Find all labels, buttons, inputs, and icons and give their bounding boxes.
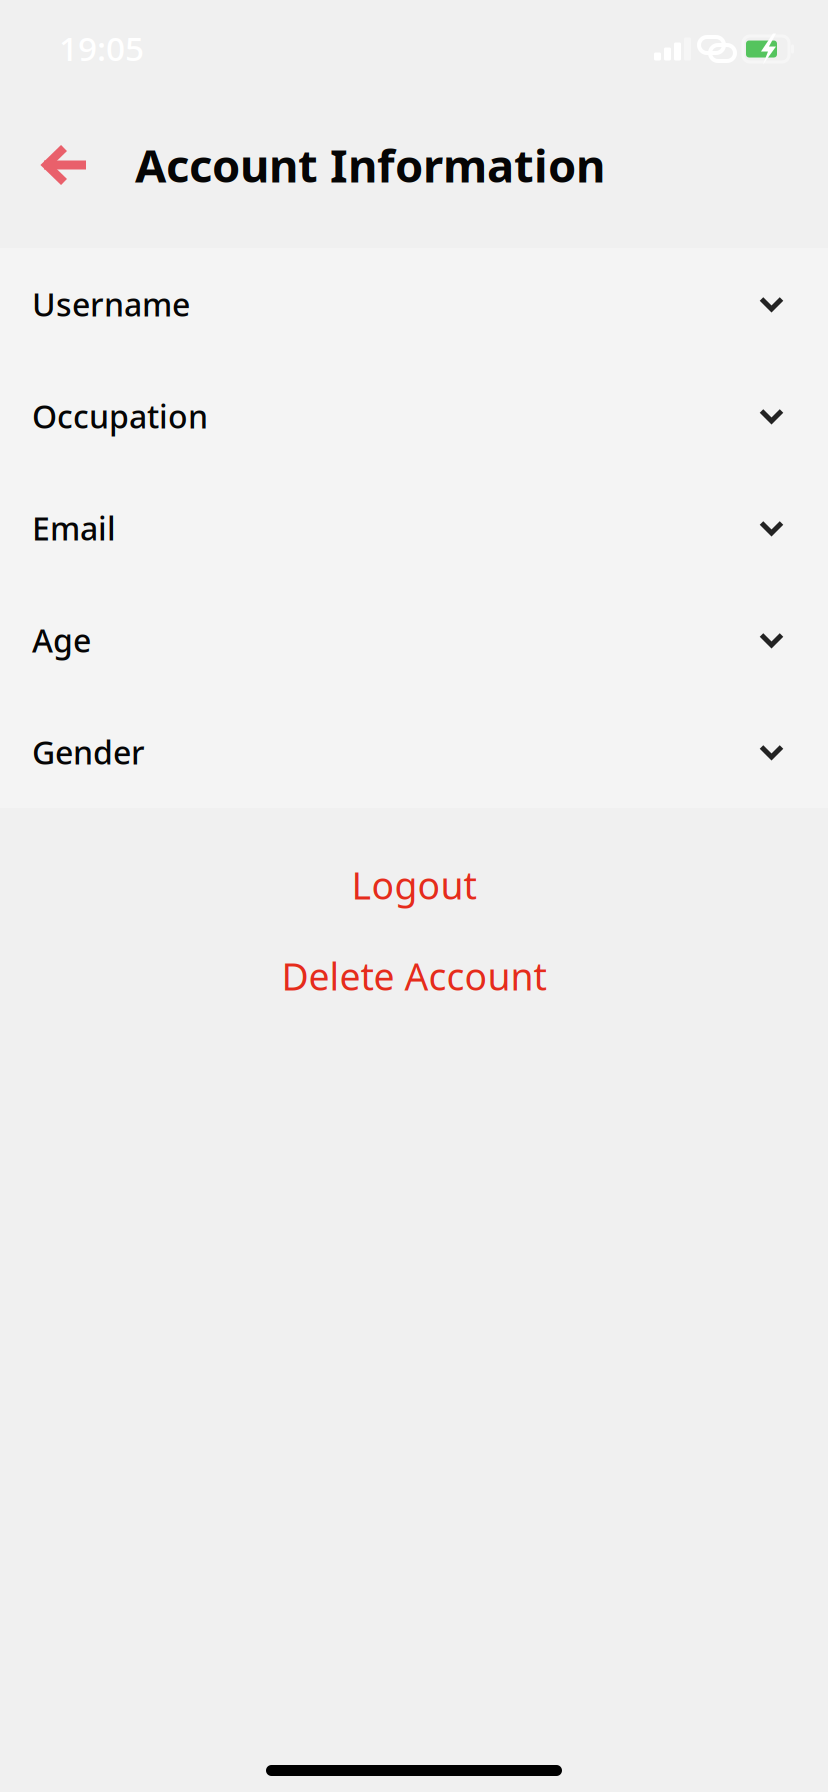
- staticText: Logout: [351, 860, 476, 910]
- button[interactable]: Back: [0, 124, 101, 206]
- button[interactable]: Occupation: [0, 360, 828, 472]
- staticText: 19:05: [59, 26, 144, 70]
- staticText: Delete Account: [281, 951, 546, 1001]
- staticText: Email: [32, 507, 116, 549]
- button[interactable]: Username: [0, 248, 828, 360]
- staticText: Username: [32, 283, 190, 325]
- button[interactable]: Delete Account: [0, 944, 828, 1008]
- button[interactable]: Email: [0, 472, 828, 584]
- button[interactable]: Logout: [0, 853, 828, 917]
- staticText: Occupation: [32, 395, 208, 437]
- staticText: Age: [32, 619, 91, 661]
- staticText: Gender: [32, 731, 145, 773]
- staticText: Account Information: [135, 135, 605, 195]
- button[interactable]: Gender: [0, 696, 828, 808]
- button[interactable]: Age: [0, 584, 828, 696]
